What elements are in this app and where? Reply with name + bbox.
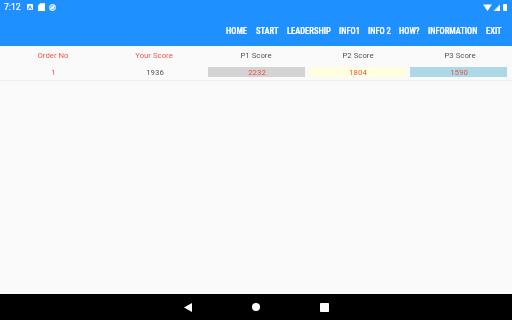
button[interactable]: Recent apps: [290, 294, 358, 320]
staticText: LEADERSHIP: [287, 26, 331, 36]
staticText: INFO1: [339, 26, 360, 36]
staticText: HOME: [226, 26, 248, 36]
staticText: P3 Score: [444, 51, 476, 60]
staticText: 1804: [349, 68, 367, 77]
staticText: HOW?: [399, 26, 420, 36]
button[interactable]: START: [252, 21, 283, 41]
button[interactable]: Home: [222, 294, 290, 320]
staticText: P2 Score: [342, 51, 374, 60]
button[interactable]: LEADERSHIP: [283, 21, 335, 41]
button[interactable]: HOW?: [395, 21, 424, 41]
staticText: EXIT: [486, 26, 502, 36]
staticText: 1: [51, 68, 56, 77]
staticText: P1 Score: [240, 51, 272, 60]
staticText: Order No: [37, 51, 69, 60]
button[interactable]: EXIT: [482, 21, 506, 41]
staticText: INFORMATION: [428, 26, 478, 36]
staticText: 1936: [146, 68, 164, 77]
button[interactable]: INFORMATION: [424, 21, 482, 41]
staticText: 1590: [450, 68, 468, 77]
button[interactable]: INFO 2: [364, 21, 395, 41]
staticText: START: [256, 26, 279, 36]
staticText: 7:12: [4, 2, 21, 12]
staticText: 2232: [248, 68, 266, 77]
staticText: Your Score: [135, 51, 173, 60]
button[interactable]: INFO1: [335, 21, 364, 41]
button[interactable]: Back: [154, 294, 222, 320]
button[interactable]: HOME: [222, 21, 252, 41]
staticText: INFO 2: [368, 26, 391, 36]
